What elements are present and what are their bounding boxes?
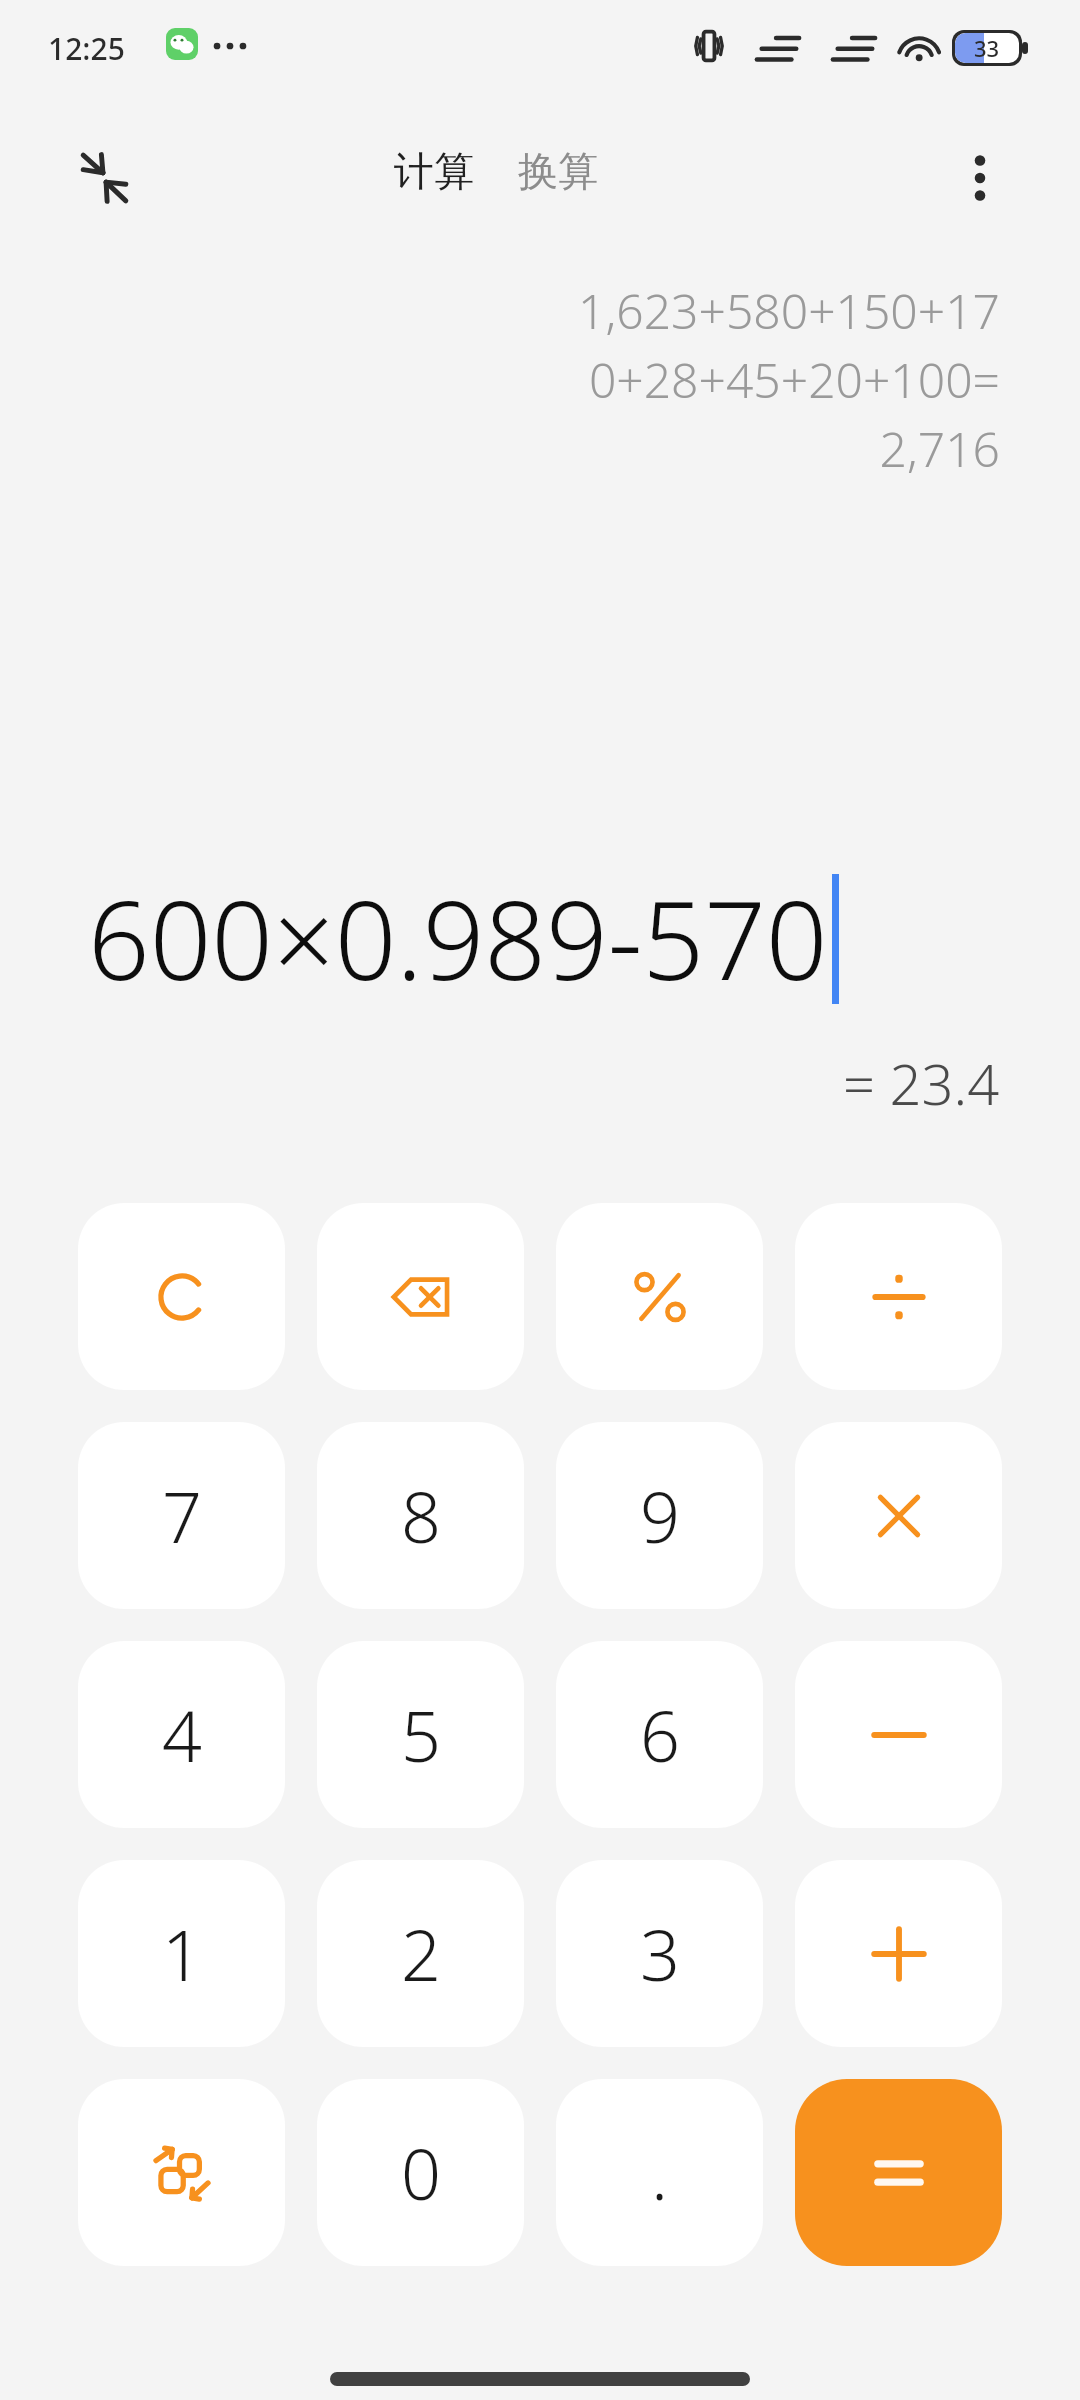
button[interactable]: Clear	[78, 1203, 285, 1390]
button[interactable]: Equals	[795, 2079, 1002, 2266]
staticText: 0	[401, 2125, 441, 2220]
button[interactable]: 换算	[512, 140, 604, 202]
button[interactable]: 4	[78, 1641, 285, 1828]
staticText: 8	[401, 1468, 441, 1563]
button[interactable]: 2	[317, 1860, 524, 2047]
button[interactable]: 计算	[388, 140, 480, 202]
button[interactable]: 600×0.989-570	[88, 865, 839, 1012]
button[interactable]: 9	[556, 1422, 763, 1609]
button[interactable]: 7	[78, 1422, 285, 1609]
button[interactable]: Minus	[795, 1641, 1002, 1828]
staticText: 1,623+580+150+17	[578, 278, 1000, 343]
staticText: 2	[401, 1906, 441, 2001]
staticText: 2,716	[879, 416, 1000, 481]
staticText: 6	[640, 1687, 680, 1782]
staticText: 12:25	[48, 28, 125, 69]
staticText: 9	[640, 1468, 680, 1563]
staticText: 1	[162, 1906, 202, 2001]
staticText: 600×0.989-570	[88, 865, 828, 1012]
staticText: = 23.4	[843, 1045, 1000, 1121]
staticText: 换算	[518, 146, 598, 196]
staticText: 计算	[394, 146, 474, 196]
staticText: 33	[974, 33, 1000, 63]
button[interactable]: .	[556, 2079, 763, 2266]
staticText: 0+28+45+20+100=	[588, 347, 1000, 412]
button[interactable]: 1,623+580+150+17	[0, 278, 1080, 538]
staticText: 5	[401, 1687, 441, 1782]
button[interactable]: 0	[317, 2079, 524, 2266]
staticText: 7	[162, 1468, 202, 1563]
button[interactable]: More options	[936, 134, 1024, 222]
button[interactable]: Plus	[795, 1860, 1002, 2047]
button[interactable]: Divide	[795, 1203, 1002, 1390]
button[interactable]: 6	[556, 1641, 763, 1828]
button[interactable]: Multiply	[795, 1422, 1002, 1609]
button[interactable]: 5	[317, 1641, 524, 1828]
staticText: 4	[162, 1687, 202, 1782]
button[interactable]: 8	[317, 1422, 524, 1609]
button[interactable]: Backspace	[317, 1203, 524, 1390]
staticText: 3	[640, 1906, 680, 2001]
button[interactable]: Collapse	[60, 134, 148, 222]
button[interactable]: 3	[556, 1860, 763, 2047]
staticText: .	[651, 2125, 669, 2220]
button[interactable]: Percent	[556, 1203, 763, 1390]
button[interactable]: Convert	[78, 2079, 285, 2266]
button[interactable]: 1	[78, 1860, 285, 2047]
